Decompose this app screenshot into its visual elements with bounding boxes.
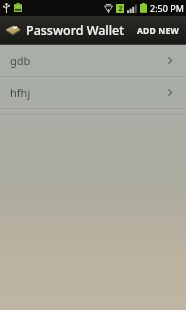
- button[interactable]: gdb: [0, 45, 186, 76]
- staticText: 2:50 PM: [150, 2, 184, 14]
- button[interactable]: hfhj: [0, 77, 186, 108]
- staticText: Password Wallet: [26, 22, 125, 39]
- staticText: gdb: [10, 53, 31, 68]
- staticText: 2: [118, 4, 123, 13]
- button[interactable]: App icon: [4, 22, 125, 39]
- staticText: ADD NEW: [137, 25, 179, 37]
- button[interactable]: ADD NEW: [130, 16, 186, 45]
- other: App icon: [4, 23, 21, 38]
- staticText: hfhj: [10, 85, 31, 100]
